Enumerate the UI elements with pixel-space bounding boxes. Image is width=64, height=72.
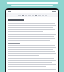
- button[interactable]: Editor toolbar: [6, 13, 58, 17]
- button[interactable]: Phone preview: [5, 8, 59, 72]
